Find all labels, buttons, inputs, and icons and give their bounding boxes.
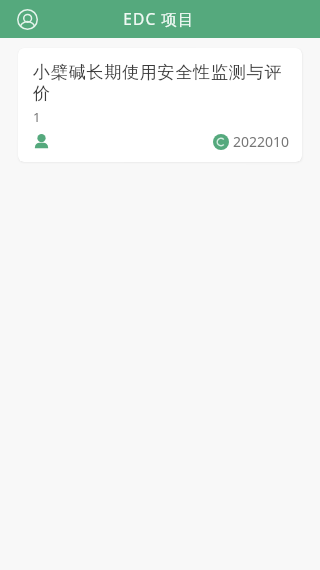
staticText: 小檗碱长期使用安全性监测与评价 — [33, 62, 290, 104]
staticText: 1 — [33, 108, 41, 126]
staticText: 2022010 — [233, 132, 290, 151]
button[interactable]: Account — [17, 9, 38, 30]
button[interactable]: 小檗碱长期使用安全性监测与评价 — [18, 48, 302, 162]
staticText: EDC 项目 — [123, 8, 195, 29]
other: Participants — [34, 134, 49, 149]
